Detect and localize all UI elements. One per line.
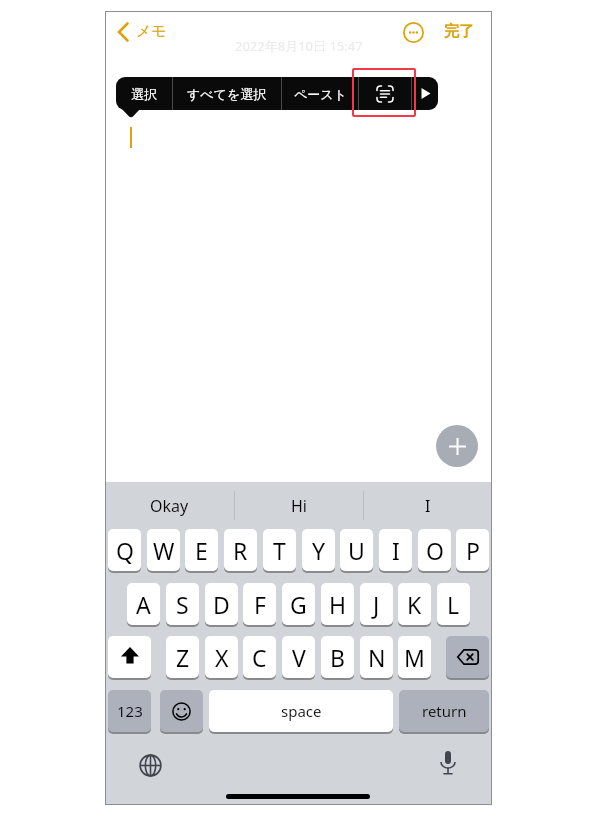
button[interactable] [446, 636, 489, 678]
button[interactable]: I [379, 529, 412, 571]
staticText: V [292, 642, 306, 673]
button[interactable]: C [243, 636, 276, 678]
button[interactable] [108, 636, 151, 678]
staticText: W [153, 535, 175, 566]
button[interactable]: 選択 [116, 77, 172, 110]
staticText: U [348, 535, 365, 566]
staticText: K [407, 589, 422, 620]
staticText: ペースト [294, 86, 347, 102]
staticText: S [176, 589, 189, 620]
button[interactable] [359, 77, 411, 110]
button[interactable]: L [437, 583, 470, 625]
button[interactable] [436, 425, 478, 467]
staticText: I [392, 535, 400, 566]
staticText: X [215, 642, 229, 673]
staticText: D [213, 589, 230, 620]
button[interactable] [160, 690, 203, 732]
button[interactable]: S [166, 583, 199, 625]
staticText: return [422, 701, 467, 721]
button[interactable]: I [363, 482, 492, 529]
button[interactable]: H [321, 583, 354, 625]
button[interactable]: R [224, 529, 257, 571]
button[interactable]: U [340, 529, 373, 571]
button[interactable]: Y [302, 529, 335, 571]
button[interactable] [139, 754, 162, 777]
staticText: T [273, 535, 286, 566]
button[interactable]: D [205, 583, 238, 625]
staticText: P [466, 535, 480, 566]
staticText: N [368, 642, 386, 673]
staticText: G [290, 589, 307, 620]
button[interactable]: A [127, 583, 160, 625]
button[interactable]: J [360, 583, 393, 625]
staticText: R [233, 535, 248, 566]
button[interactable] [412, 77, 438, 110]
button[interactable]: space [209, 690, 393, 732]
button[interactable]: 完了 [444, 22, 474, 41]
button[interactable]: P [456, 529, 489, 571]
button[interactable]: F [243, 583, 276, 625]
staticText: Okay [150, 495, 189, 517]
staticText: E [195, 535, 208, 566]
staticText: 2022年8月10日 15:47 [235, 37, 363, 55]
staticText: A [136, 589, 151, 620]
button[interactable]: X [205, 636, 238, 678]
button[interactable]: Okay [105, 482, 234, 529]
staticText: C [252, 642, 267, 673]
staticText: すべてを選択 [187, 86, 267, 102]
button[interactable]: N [360, 636, 393, 678]
staticText: B [330, 642, 345, 673]
staticText: O [426, 535, 444, 566]
button[interactable]: O [418, 529, 451, 571]
staticText: space [281, 701, 322, 721]
staticText: 123 [117, 701, 143, 721]
button[interactable]: E [185, 529, 218, 571]
button[interactable] [117, 22, 129, 42]
staticText: Hi [291, 495, 307, 517]
button[interactable]: return [399, 690, 489, 732]
button[interactable]: W [147, 529, 180, 571]
button[interactable]: M [398, 636, 431, 678]
button[interactable] [403, 22, 424, 43]
button[interactable]: ペースト [282, 77, 358, 110]
button[interactable]: T [263, 529, 296, 571]
button[interactable]: Q [108, 529, 141, 571]
button[interactable]: V [282, 636, 315, 678]
button[interactable]: G [282, 583, 315, 625]
staticText: 選択 [131, 86, 157, 102]
staticText: F [254, 589, 266, 620]
staticText: M [404, 642, 425, 673]
staticText: J [373, 589, 380, 620]
staticText: L [447, 589, 460, 620]
button[interactable]: メモ [136, 22, 167, 41]
button[interactable]: すべてを選択 [173, 77, 281, 110]
staticText: Q [116, 535, 134, 566]
button[interactable]: 123 [108, 690, 151, 732]
staticText: Y [312, 535, 326, 566]
button[interactable]: Hi [234, 482, 363, 529]
staticText: H [329, 589, 347, 620]
staticText: I [425, 495, 431, 517]
button[interactable]: K [398, 583, 431, 625]
button[interactable]: B [321, 636, 354, 678]
button[interactable]: Z [166, 636, 199, 678]
staticText: Z [176, 642, 190, 673]
button[interactable] [440, 751, 456, 777]
